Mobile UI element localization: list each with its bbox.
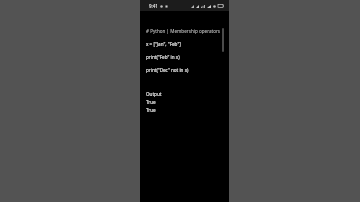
staticText: print("Feb" in x) bbox=[146, 54, 180, 60]
staticText: True bbox=[146, 99, 156, 105]
staticText: True bbox=[146, 107, 156, 113]
button[interactable]: # Python | Membership operators bbox=[146, 28, 225, 34]
button[interactable]: Output bbox=[146, 91, 225, 97]
staticText: print("Dec" not in x) bbox=[146, 67, 189, 73]
staticText: # Python | Membership operators bbox=[146, 28, 221, 34]
staticText: x = ["Jan", "Feb"] bbox=[146, 41, 181, 47]
button[interactable]: x = ["Jan", "Feb"] bbox=[146, 41, 225, 47]
button[interactable]: print("Dec" not in x) bbox=[146, 67, 225, 73]
button[interactable]: True bbox=[146, 99, 225, 105]
staticText: 9:41 bbox=[149, 3, 158, 9]
staticText: Output bbox=[146, 91, 162, 97]
button[interactable]: True bbox=[146, 107, 225, 113]
button[interactable]: print("Feb" in x) bbox=[146, 54, 225, 60]
